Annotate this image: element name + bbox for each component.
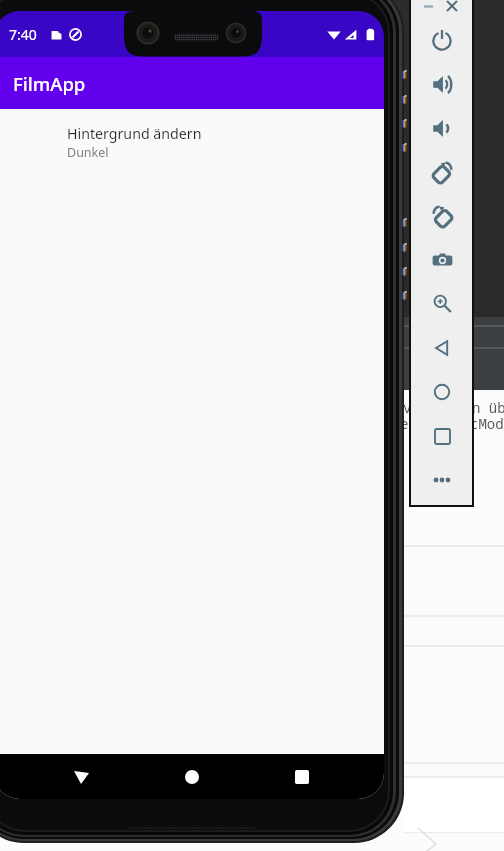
staticText: cMode — [470, 414, 504, 433]
button[interactable]: Volume up — [420, 62, 464, 106]
button[interactable]: Power — [420, 18, 464, 62]
button[interactable]: Minimize — [420, 0, 436, 14]
button[interactable]: Overview — [420, 414, 464, 458]
staticText: n übe — [472, 398, 504, 417]
button[interactable]: Zoom — [420, 282, 464, 326]
staticText: 7:40 — [9, 25, 37, 44]
button[interactable]: Rotate left — [420, 150, 464, 194]
staticText: FilmApp — [13, 71, 86, 96]
staticText: ef — [400, 414, 417, 433]
button[interactable]: Recents — [280, 755, 324, 799]
staticText: Hintergrund ändern — [67, 124, 202, 143]
button[interactable]: Back — [420, 326, 464, 370]
button[interactable]: Take screenshot — [420, 238, 464, 282]
button[interactable]: Home — [170, 755, 214, 799]
button[interactable]: Volume down — [420, 106, 464, 150]
staticText: v — [403, 398, 412, 417]
button[interactable]: Home — [420, 370, 464, 414]
button[interactable]: More — [420, 458, 464, 502]
button[interactable]: Close — [444, 0, 460, 14]
staticText: Dunkel — [67, 144, 109, 161]
button[interactable]: Rotate right — [420, 194, 464, 238]
button[interactable]: Hintergrund ändern — [0, 109, 384, 173]
button[interactable]: Back — [59, 755, 103, 799]
